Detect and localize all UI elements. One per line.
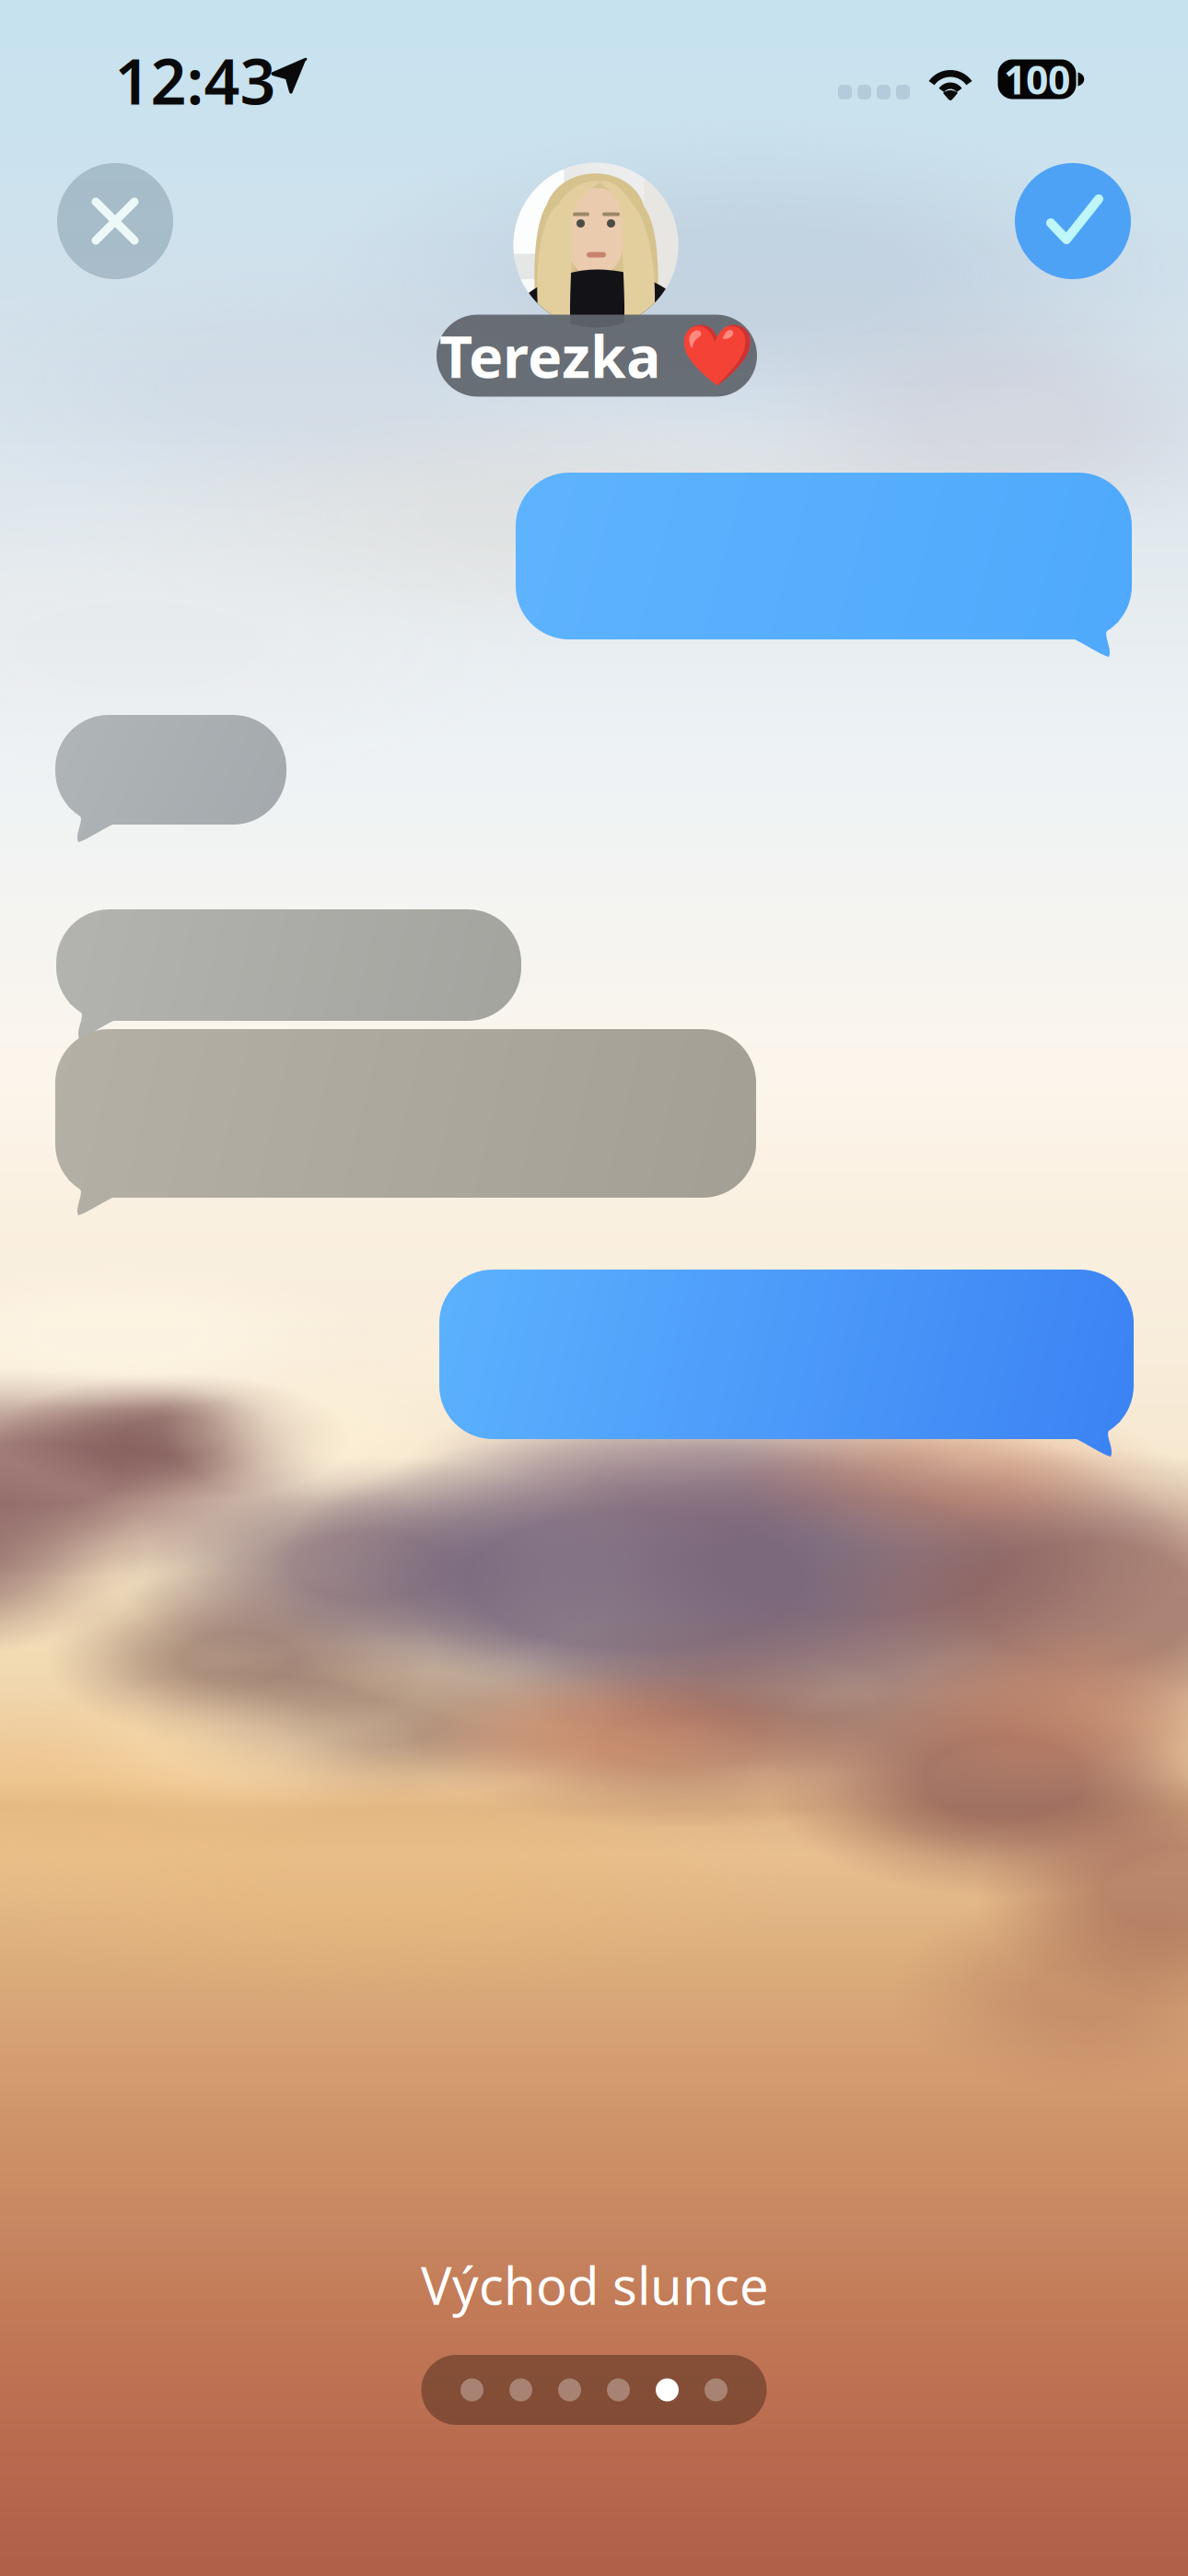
staticText: 12:43 (115, 39, 276, 122)
staticText: Terezka (439, 317, 661, 394)
button[interactable]: Cancel (57, 163, 173, 279)
staticText: Východ slunce (421, 2251, 769, 2319)
staticText: ❤️ (680, 321, 754, 390)
button[interactable]: Done (1015, 163, 1131, 279)
staticText: 100 (1004, 53, 1070, 105)
